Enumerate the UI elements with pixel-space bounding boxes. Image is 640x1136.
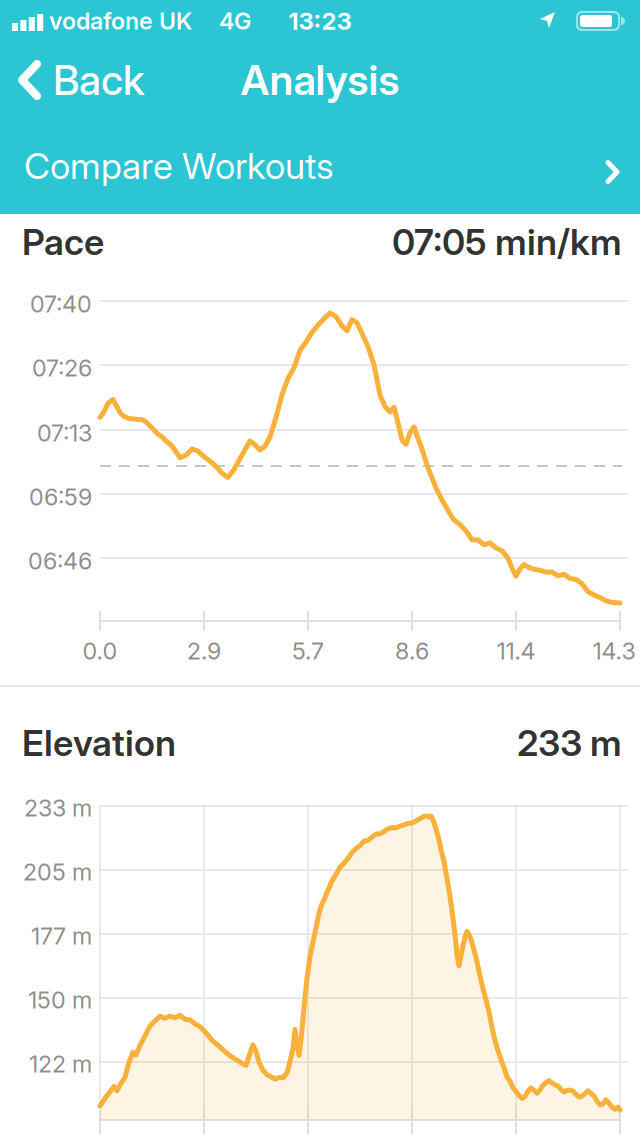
- staticText: 07:26: [32, 354, 92, 382]
- staticText: 205 m: [23, 858, 92, 886]
- staticText: Compare Workouts: [24, 144, 334, 188]
- staticText: 150 m: [28, 986, 92, 1014]
- button[interactable]: Compare Workouts: [0, 123, 640, 209]
- staticText: 8.6: [395, 637, 429, 665]
- staticText: Back: [53, 55, 145, 105]
- staticText: 177 m: [31, 922, 92, 950]
- staticText: 06:59: [29, 483, 92, 511]
- staticText: 233 m: [24, 794, 92, 822]
- staticText: 4G: [219, 7, 251, 35]
- staticText: 06:46: [28, 547, 92, 575]
- staticText: 2.9: [187, 637, 221, 665]
- button[interactable]: Back: [18, 56, 145, 104]
- staticText: 5.7: [292, 637, 324, 665]
- staticText: 0.0: [82, 637, 117, 665]
- staticText: 122 m: [29, 1050, 92, 1078]
- staticText: Analysis: [240, 55, 399, 105]
- staticText: 233 m: [517, 721, 622, 765]
- staticText: 07:13: [37, 419, 92, 447]
- staticText: 07:40: [30, 290, 92, 318]
- staticText: Pace: [22, 220, 104, 264]
- staticText: 13:23: [288, 6, 351, 35]
- staticText: 14.3: [592, 637, 635, 665]
- staticText: vodafone UK: [49, 7, 192, 35]
- staticText: Elevation: [22, 721, 176, 765]
- staticText: 07:05 min/km: [392, 220, 622, 264]
- staticText: 11.4: [496, 637, 535, 665]
